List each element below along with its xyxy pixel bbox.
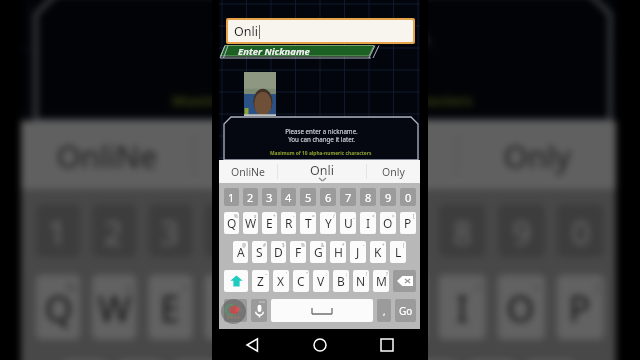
button[interactable]: G: [310, 241, 326, 263]
button[interactable]: B: [333, 270, 349, 292]
button[interactable]: Screen recorder: [221, 299, 246, 324]
button[interactable]: Recents: [353, 329, 420, 360]
button[interactable]: P: [400, 212, 416, 234]
button[interactable]: Onli: [228, 20, 413, 42]
button[interactable]: Space: [271, 299, 373, 322]
button[interactable]: 7: [340, 188, 356, 206]
button[interactable]: 9: [498, 204, 545, 257]
button[interactable]: 4: [205, 204, 249, 257]
staticText: #: [263, 242, 266, 248]
staticText: Q: [45, 284, 74, 331]
button[interactable]: 3: [148, 204, 193, 257]
button[interactable]: W: [92, 275, 136, 340]
button[interactable]: 9: [380, 188, 396, 206]
button[interactable]: U: [340, 212, 356, 234]
button[interactable]: V: [313, 270, 329, 292]
button[interactable]: 2: [92, 204, 136, 257]
button[interactable]: R: [281, 212, 296, 234]
button[interactable]: Y: [320, 212, 336, 234]
button[interactable]: 8: [438, 204, 486, 257]
button[interactable]: 7: [379, 204, 427, 257]
button[interactable]: Onli: [196, 121, 456, 189]
staticText: F: [295, 244, 302, 260]
staticText: D: [274, 244, 283, 260]
staticText: 2: [247, 190, 254, 205]
button[interactable]: 5: [300, 188, 316, 206]
staticText: Go: [399, 304, 413, 318]
button[interactable]: Z: [252, 270, 269, 292]
button[interactable]: 1: [224, 188, 239, 206]
button[interactable]: E: [262, 212, 277, 234]
staticText: 1: [48, 210, 68, 254]
staticText: (: [403, 242, 405, 248]
button[interactable]: H: [330, 241, 346, 263]
button[interactable]: O: [498, 275, 545, 340]
button[interactable]: D: [271, 241, 286, 263]
button[interactable]: 2: [243, 188, 258, 206]
staticText: T: [305, 215, 312, 231]
staticText: Onli: [290, 127, 361, 177]
button[interactable]: Only: [459, 121, 616, 189]
button[interactable]: Go: [395, 299, 416, 322]
button[interactable]: 3: [262, 188, 277, 206]
button[interactable]: Back: [219, 329, 286, 360]
button[interactable]: A: [233, 241, 248, 263]
button[interactable]: 1: [36, 204, 80, 257]
button[interactable]: Only: [367, 160, 420, 183]
staticText: 8: [365, 190, 372, 205]
button[interactable]: 6: [320, 188, 336, 206]
button[interactable]: L: [390, 241, 406, 263]
button[interactable]: 6: [320, 204, 367, 257]
staticText: 7: [394, 210, 415, 254]
button[interactable]: W: [243, 212, 258, 234]
staticText: *: [342, 242, 345, 248]
staticText: 6: [325, 190, 332, 205]
staticText: x: [254, 213, 257, 219]
staticText: ?: [386, 271, 388, 277]
button[interactable]: P: [557, 275, 604, 340]
button[interactable]: ,: [377, 299, 391, 322]
staticText: M: [376, 273, 387, 289]
button[interactable]: Shift: [224, 270, 248, 292]
button[interactable]: N: [353, 270, 369, 292]
button[interactable]: K: [370, 241, 386, 263]
staticText: 9: [512, 210, 533, 254]
button[interactable]: T: [261, 275, 308, 340]
staticText: ,: [383, 305, 386, 317]
button[interactable]: I: [438, 275, 486, 340]
staticText: G: [314, 244, 323, 260]
button[interactable]: 8: [360, 188, 376, 206]
button[interactable]: R: [205, 275, 249, 340]
button[interactable]: OnliNe: [219, 160, 277, 183]
button[interactable]: E: [148, 275, 193, 340]
button[interactable]: 4: [281, 188, 296, 206]
button[interactable]: 0: [557, 204, 604, 257]
button[interactable]: Delete: [393, 270, 416, 292]
staticText: E: [266, 215, 273, 231]
button[interactable]: S: [252, 241, 267, 263]
button[interactable]: C: [293, 270, 309, 292]
button[interactable]: OnliNe: [21, 121, 193, 189]
button[interactable]: X: [273, 270, 289, 292]
button[interactable]: M: [373, 270, 389, 292]
staticText: ;: [346, 271, 348, 277]
button[interactable]: U: [379, 275, 427, 340]
button[interactable]: I: [360, 212, 376, 234]
button[interactable]: 0: [400, 188, 416, 206]
button[interactable]: Onli: [278, 160, 366, 183]
staticText: >: [392, 213, 395, 219]
staticText: !: [366, 271, 368, 277]
button[interactable]: O: [380, 212, 396, 234]
button[interactable]: T: [300, 212, 316, 234]
button[interactable]: J: [350, 241, 366, 263]
button[interactable]: [224, 299, 247, 322]
button[interactable]: Voice input: [251, 299, 267, 322]
button[interactable]: Y: [320, 275, 367, 340]
button[interactable]: Q: [36, 275, 80, 340]
button[interactable]: 5: [261, 204, 308, 257]
button[interactable]: F: [290, 241, 306, 263]
button[interactable]: Home: [286, 329, 353, 360]
button[interactable]: Q: [224, 212, 239, 234]
